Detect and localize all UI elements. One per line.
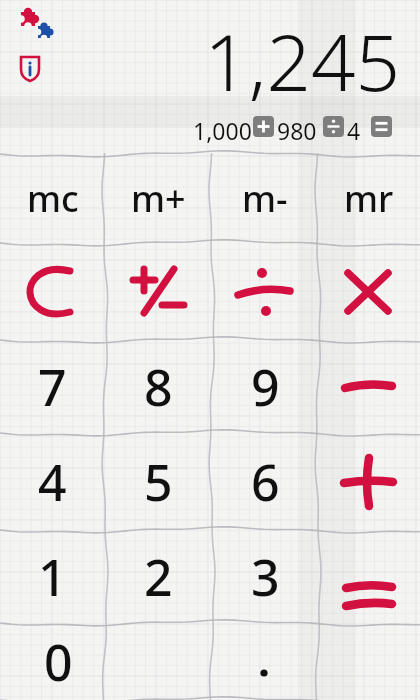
staticText: 2 [144, 543, 173, 611]
staticText: mc [27, 174, 79, 223]
staticText: 5 [144, 448, 173, 516]
button[interactable]: 5 [105, 433, 212, 530]
button[interactable]: Add-ons [14, 6, 60, 46]
staticText: 3 [251, 543, 280, 611]
staticText: 4 [347, 115, 361, 146]
button[interactable]: m- [212, 154, 318, 243]
button[interactable]: 0 [0, 623, 212, 700]
staticText: 4 [38, 448, 67, 516]
button[interactable]: 3 [212, 530, 318, 623]
button[interactable] [318, 433, 420, 530]
button[interactable]: 9 [212, 340, 318, 433]
staticText: 6 [251, 448, 280, 516]
button[interactable]: 6 [212, 433, 318, 530]
button[interactable] [212, 623, 318, 700]
staticText: 1,245 [0, 8, 400, 104]
button[interactable]: 4 [0, 433, 105, 530]
button[interactable] [105, 243, 212, 340]
button[interactable]: m+ [105, 154, 212, 243]
staticText: mr [344, 174, 394, 223]
button[interactable]: 2 [105, 530, 212, 623]
staticText: m+ [131, 174, 186, 223]
staticText: 7 [38, 353, 67, 421]
button[interactable] [0, 243, 105, 340]
staticText: 9 [251, 353, 280, 421]
button[interactable] [318, 243, 420, 340]
button[interactable]: mr [318, 154, 420, 243]
button[interactable] [212, 243, 318, 340]
staticText: 1 [38, 543, 67, 611]
staticText: 980 [277, 115, 317, 146]
staticText: 1,000 [193, 115, 252, 146]
button[interactable] [318, 340, 420, 433]
button[interactable]: 8 [105, 340, 212, 433]
button[interactable]: mc [0, 154, 105, 243]
button[interactable]: 1 [0, 530, 105, 623]
staticText: m- [242, 174, 288, 223]
button[interactable] [318, 530, 420, 700]
button[interactable]: Info [16, 52, 48, 84]
staticText: 0 [44, 628, 73, 696]
button[interactable]: 7 [0, 340, 105, 433]
staticText: 8 [144, 353, 173, 421]
